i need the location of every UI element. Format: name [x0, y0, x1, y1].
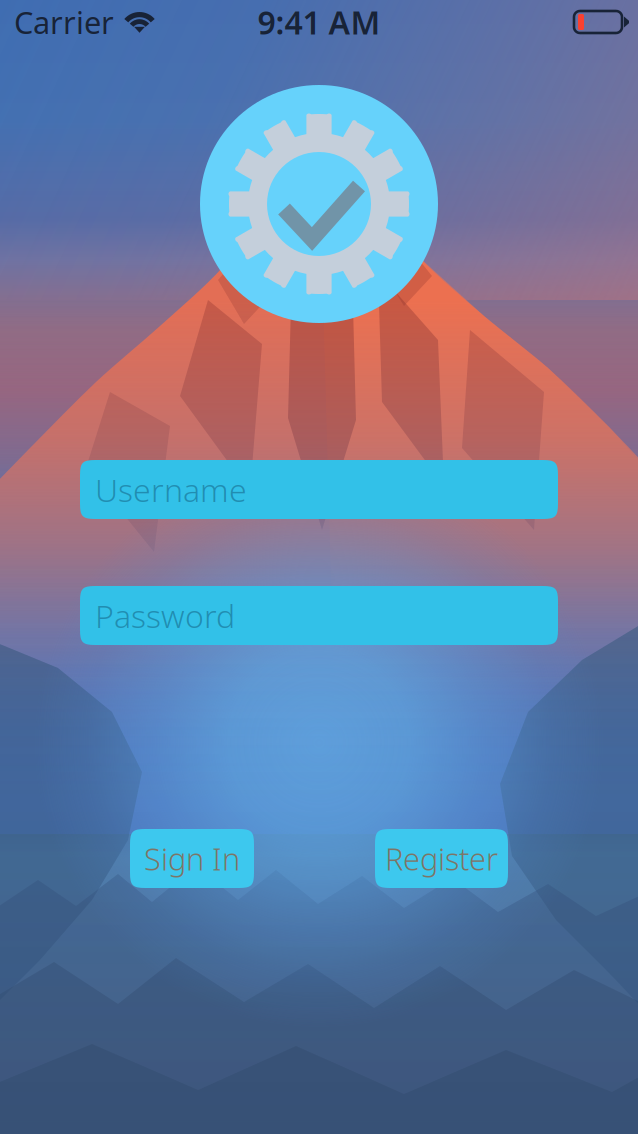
staticText: 9:41 AM	[257, 1, 380, 43]
button[interactable]: Username	[80, 460, 558, 519]
button[interactable]: Register	[375, 829, 508, 888]
button[interactable]: Sign In	[130, 829, 254, 888]
button[interactable]: Password	[80, 586, 558, 645]
staticText: Password	[95, 594, 235, 637]
staticText: Carrier	[14, 2, 114, 42]
staticText: Sign In	[144, 838, 240, 879]
staticText: Register	[385, 838, 498, 879]
staticText: Username	[95, 468, 247, 511]
